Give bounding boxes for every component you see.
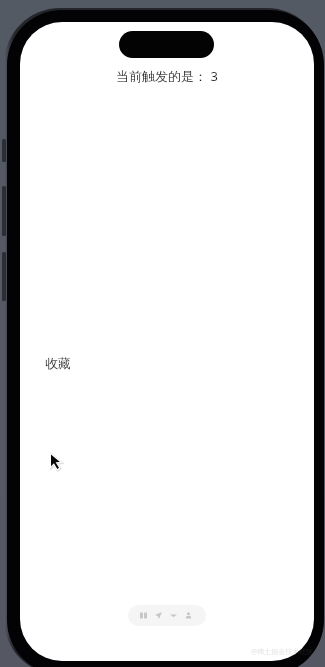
button[interactable]: 收藏: [45, 355, 71, 371]
staticText: 当前触发的是： 3: [116, 67, 218, 85]
button[interactable]: Silent switch: [2, 139, 6, 162]
button[interactable]: Profile: [185, 612, 192, 619]
button[interactable]: Send: [155, 612, 162, 619]
staticText: @稀土掘金技术社区: [251, 647, 314, 657]
button[interactable]: More options: [170, 612, 177, 619]
button[interactable]: Library: [140, 612, 147, 619]
staticText: 收藏: [45, 355, 71, 371]
